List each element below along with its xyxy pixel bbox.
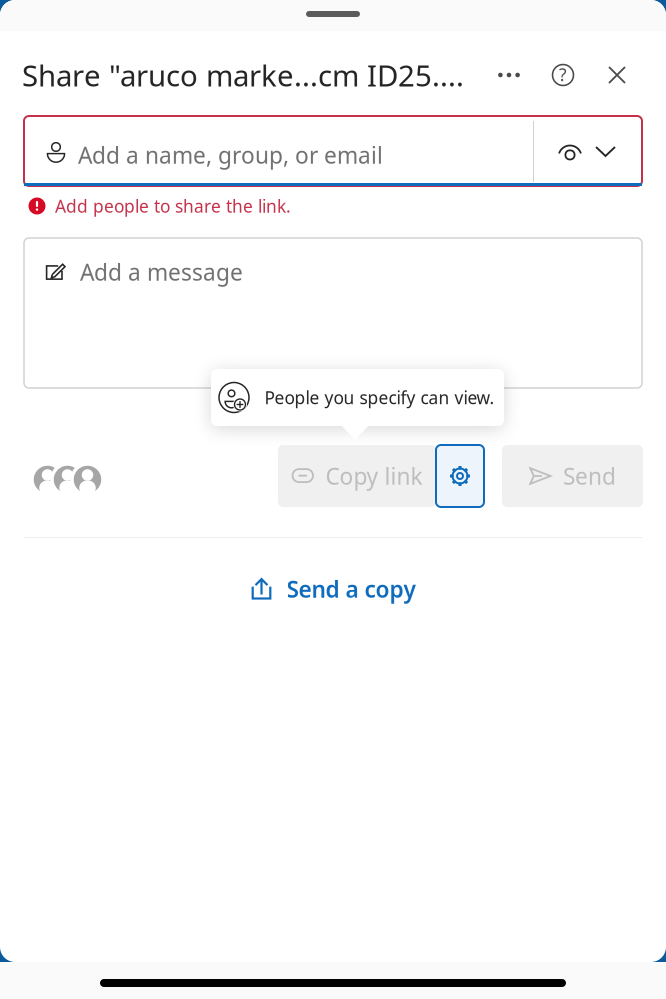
staticText: Add a message bbox=[80, 257, 243, 287]
button[interactable]: More options bbox=[482, 49, 536, 101]
staticText: Send bbox=[563, 461, 616, 491]
button[interactable]: Copy link bbox=[278, 445, 436, 507]
button[interactable]: Link permissions bbox=[543, 117, 597, 185]
button[interactable]: Help bbox=[536, 49, 590, 101]
staticText: People you specify can view. bbox=[264, 386, 494, 409]
button[interactable]: Send bbox=[502, 445, 643, 507]
staticText: Share "aruco marke...cm ID25.... bbox=[22, 55, 464, 94]
button[interactable]: Close bbox=[590, 49, 644, 101]
staticText: Send a copy bbox=[286, 574, 415, 604]
button[interactable]: Expand recipients bbox=[583, 117, 628, 185]
staticText: Add a name, group, or email bbox=[78, 140, 383, 170]
staticText: ? bbox=[559, 63, 567, 86]
staticText: Copy link bbox=[325, 461, 422, 491]
button[interactable]: Send a copy bbox=[0, 557, 666, 621]
staticText: Add people to share the link. bbox=[55, 194, 291, 217]
button[interactable]: Link settings bbox=[436, 445, 484, 507]
